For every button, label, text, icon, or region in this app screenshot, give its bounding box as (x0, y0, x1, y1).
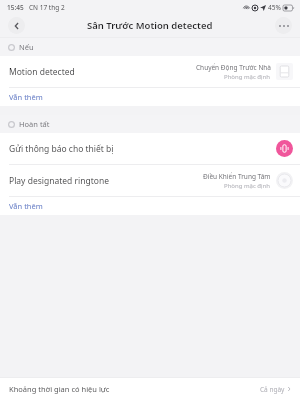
button[interactable]: Gửi thông báo cho thiết bị (0, 133, 300, 164)
staticText: Vẫn thêm (9, 92, 43, 102)
button[interactable]: Vẫn thêm (0, 88, 300, 106)
staticText: CN 17 thg 2 (29, 3, 65, 12)
button[interactable]: Play designated ringtone (0, 165, 300, 196)
button[interactable]: Vẫn thêm (0, 197, 300, 215)
staticText: Chuyển Động Trước Nhà (196, 63, 271, 72)
staticText: Motion detected (9, 66, 75, 78)
button[interactable]: Khoảng thời gian có hiệu lực (0, 378, 300, 400)
staticText: Khoảng thời gian có hiệu lực (9, 384, 110, 394)
button[interactable]: More options (275, 17, 292, 34)
staticText: Vẫn thêm (9, 201, 43, 211)
staticText: 45% (268, 3, 281, 12)
staticText: Phòng mặc định (224, 182, 271, 190)
staticText: 15:45 (7, 3, 24, 12)
staticText: Gửi thông báo cho thiết bị (9, 143, 114, 155)
staticText: Play designated ringtone (9, 175, 109, 187)
staticText: Nếu (19, 42, 34, 52)
staticText: Sân Trước Motion detected (87, 19, 213, 32)
staticText: Cả ngày (260, 385, 285, 394)
staticText: Điều Khiển Trung Tâm (203, 172, 271, 181)
button[interactable]: Motion detected (0, 56, 300, 87)
button[interactable]: Back (8, 17, 25, 34)
staticText: Phòng mặc định (224, 73, 271, 81)
staticText: Hoàn tất (19, 119, 50, 129)
